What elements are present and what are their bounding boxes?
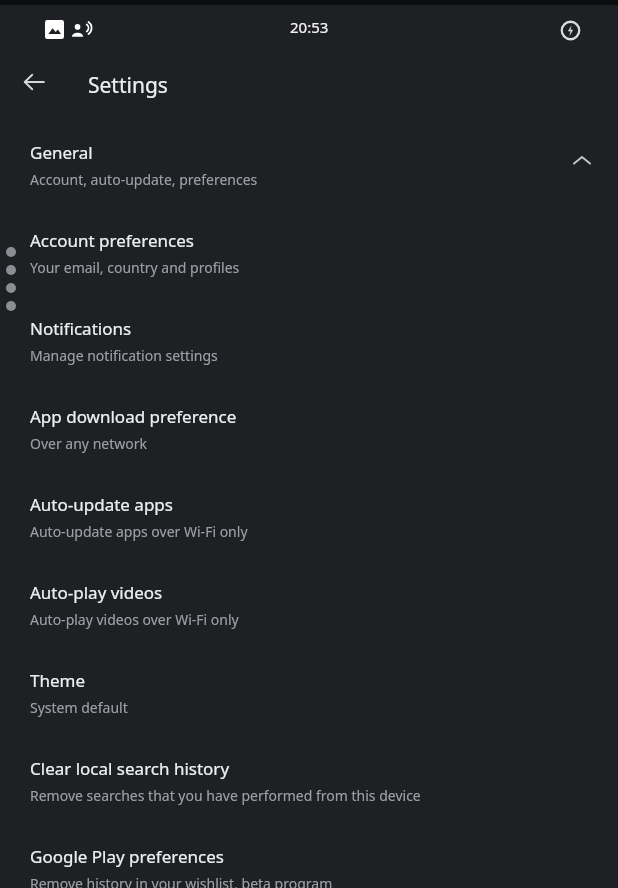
button[interactable]: Notifications (0, 303, 618, 391)
button[interactable]: Auto-update apps (0, 479, 618, 567)
button[interactable]: Auto-play videos (0, 567, 618, 655)
staticText: Settings (88, 71, 168, 100)
staticText: Auto-update apps (30, 493, 173, 516)
button[interactable]: Theme (0, 655, 618, 743)
staticText: Notifications (30, 317, 132, 340)
staticText: Manage notification settings (30, 346, 218, 365)
staticText: System default (30, 698, 128, 717)
staticText: Account preferences (30, 229, 194, 252)
button[interactable]: App download preference (0, 391, 618, 479)
staticText: Auto-update apps over Wi-Fi only (30, 522, 248, 541)
button[interactable]: General (0, 129, 618, 204)
button[interactable]: Back (12, 60, 56, 104)
staticText: Auto-play videos over Wi-Fi only (30, 610, 239, 629)
staticText: Over any network (30, 434, 147, 453)
staticText: General (30, 141, 93, 164)
staticText: Auto-play videos (30, 581, 163, 604)
button[interactable]: Google Play preferences (0, 831, 618, 888)
staticText: Remove history in your wishlist, beta pr… (30, 874, 333, 888)
staticText: Remove searches that you have performed … (30, 786, 421, 805)
button[interactable]: Collapse section (560, 139, 604, 183)
staticText: App download preference (30, 405, 237, 428)
staticText: Theme (30, 669, 86, 692)
staticText: 20:53 (290, 17, 329, 37)
staticText: Clear local search history (30, 757, 230, 780)
staticText: Account, auto-update, preferences (30, 170, 258, 189)
button[interactable]: Account preferences (0, 215, 618, 303)
staticText: Your email, country and profiles (30, 258, 240, 277)
staticText: Google Play preferences (30, 845, 224, 868)
button[interactable]: Clear local search history (0, 743, 618, 831)
